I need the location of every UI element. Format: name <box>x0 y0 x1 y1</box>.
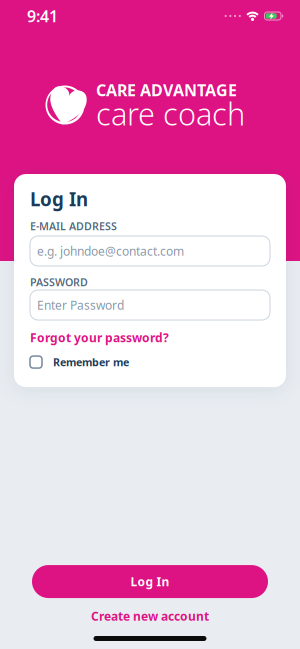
staticText: E-MAIL ADDRESS <box>30 219 117 233</box>
staticText: Create new account <box>91 608 209 624</box>
button[interactable]: Forgot your password? <box>30 332 169 343</box>
staticText: Log In <box>130 574 169 589</box>
button[interactable]: Create new account <box>91 608 209 624</box>
staticText: Remember me <box>53 355 129 369</box>
staticText: Log In <box>30 187 88 211</box>
staticText: 9:41 <box>27 5 58 27</box>
staticText: Forgot your password? <box>30 329 169 345</box>
staticText: e.g. johndoe@contact.com <box>37 243 184 259</box>
button[interactable]: Log In <box>32 565 268 598</box>
staticText: CARE ADVANTAGE <box>96 79 237 101</box>
staticText: Enter Password <box>37 297 124 313</box>
staticText: PASSWORD <box>30 275 88 289</box>
button[interactable]: Remember me <box>30 355 129 369</box>
staticText: care coach <box>96 93 245 134</box>
